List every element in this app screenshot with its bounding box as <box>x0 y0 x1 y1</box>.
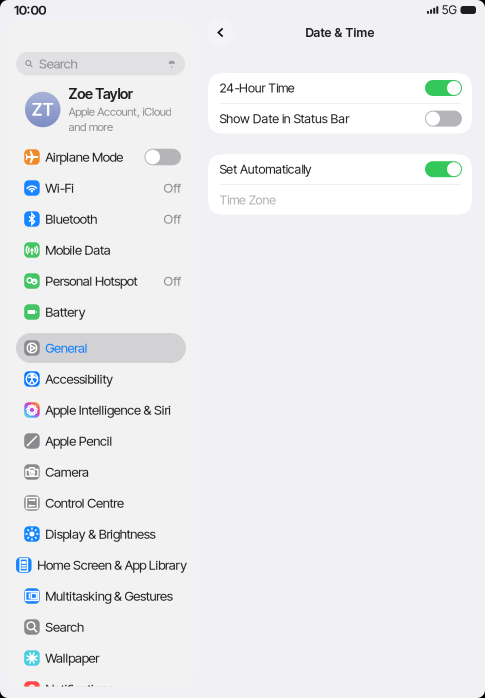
button[interactable]: Home Screen & App Library <box>16 550 186 580</box>
staticText: Date & Time <box>305 25 374 40</box>
button[interactable]: Search <box>16 612 186 642</box>
staticText: Show Date in Status Bar <box>219 111 349 126</box>
staticText: General <box>45 340 88 356</box>
staticText: Airplane Mode <box>45 149 123 165</box>
staticText: Camera <box>45 464 89 480</box>
button[interactable]: Wi-Fi <box>16 173 186 203</box>
staticText: Accessibility <box>45 371 113 387</box>
staticText: 10:00 <box>14 2 46 18</box>
staticText: Off <box>164 180 181 196</box>
staticText: 24-Hour Time <box>219 80 295 96</box>
staticText: Apple Account, iCloud <box>68 105 171 119</box>
staticText: Bluetooth <box>45 211 97 227</box>
button[interactable]: ZT <box>12 91 191 127</box>
button[interactable]: Back <box>207 19 234 46</box>
button[interactable]: Apple Pencil <box>16 426 186 456</box>
staticText: Home Screen & App Library <box>37 557 187 573</box>
staticText: Apple Pencil <box>45 433 112 449</box>
button[interactable]: Bluetooth <box>16 204 186 234</box>
staticText: Off <box>164 273 181 289</box>
staticText: Wallpaper <box>45 650 99 666</box>
button[interactable]: Display & Brightness <box>16 519 186 549</box>
staticText: Search <box>45 619 84 635</box>
staticText: Battery <box>45 304 86 320</box>
staticText: Apple Intelligence & Siri <box>45 402 171 418</box>
button[interactable]: Wallpaper <box>16 643 186 673</box>
staticText: Control Centre <box>45 495 124 511</box>
button[interactable]: Search <box>16 52 185 75</box>
staticText: Set Automatically <box>219 161 311 177</box>
staticText: and more <box>68 120 113 134</box>
staticText: Off <box>164 211 181 227</box>
staticText: Time Zone <box>219 192 276 207</box>
button[interactable]: General <box>16 333 186 363</box>
button[interactable]: Battery <box>16 297 186 327</box>
button[interactable]: Airplane Mode <box>16 142 186 172</box>
staticText: Multitasking & Gestures <box>45 588 173 604</box>
button[interactable]: Multitasking & Gestures <box>16 581 186 611</box>
button[interactable]: Notifications <box>16 674 186 698</box>
staticText: Mobile Data <box>45 242 111 258</box>
button[interactable]: Control Centre <box>16 488 186 518</box>
button[interactable]: Show Date in Status Bar <box>208 104 472 134</box>
button[interactable]: 24-Hour Time <box>208 73 472 103</box>
staticText: Notifications <box>45 681 113 697</box>
staticText: 5G <box>442 3 456 17</box>
staticText: ZT <box>32 99 54 120</box>
staticText: Display & Brightness <box>45 526 155 542</box>
button[interactable]: Accessibility <box>16 364 186 394</box>
button[interactable]: Time Zone <box>208 185 472 215</box>
button[interactable]: Personal Hotspot <box>16 266 186 296</box>
button[interactable]: Mobile Data <box>16 235 186 265</box>
staticText: Wi-Fi <box>45 180 74 196</box>
staticText: Personal Hotspot <box>45 273 137 289</box>
staticText: Zoe Taylor <box>68 85 133 102</box>
button[interactable]: Apple Intelligence & Siri <box>16 395 186 425</box>
button[interactable]: Set Automatically <box>208 154 472 184</box>
button[interactable]: Camera <box>16 457 186 487</box>
staticText: Search <box>39 56 77 72</box>
